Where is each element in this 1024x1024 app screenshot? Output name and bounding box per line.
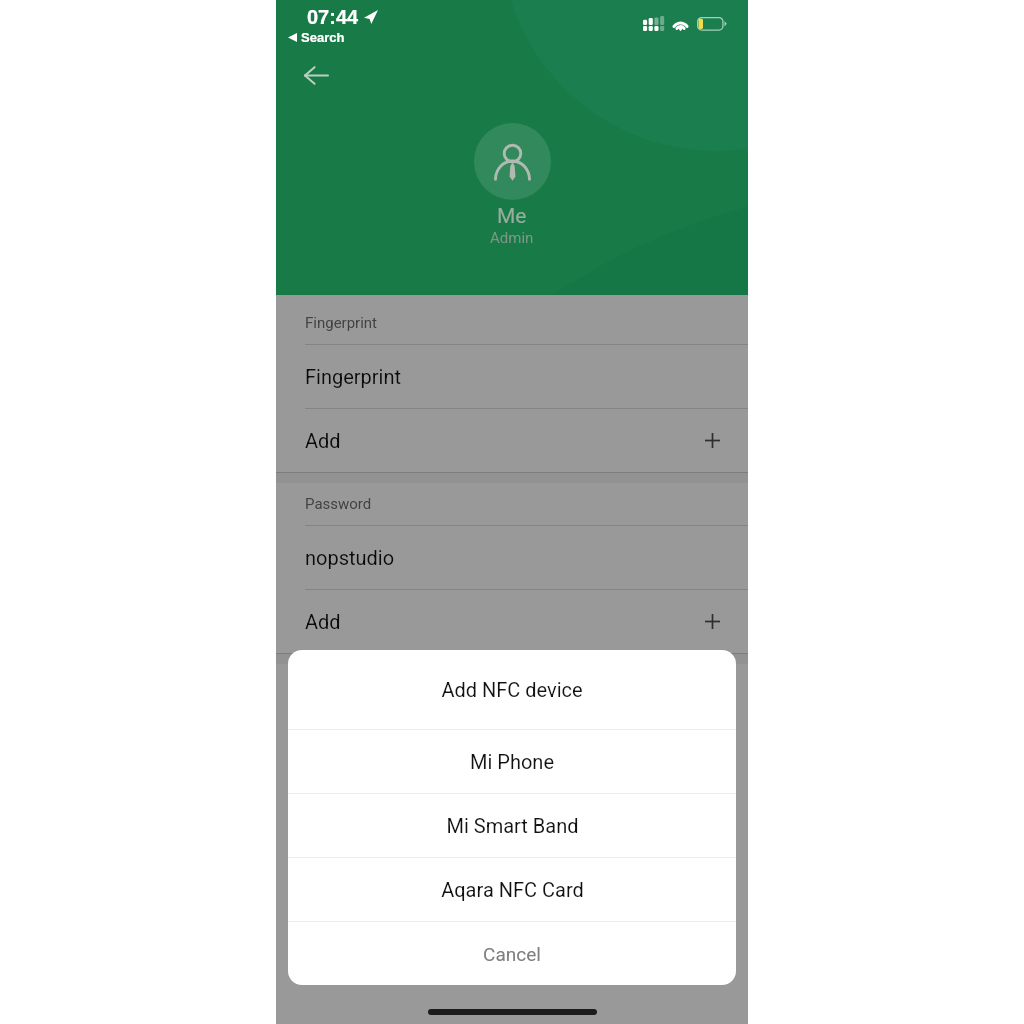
button[interactable]: Mi Phone [288,730,736,793]
staticText: Fingerprint [305,314,378,332]
button[interactable]: Profile [474,123,551,200]
button[interactable]: nopstudio [276,526,748,589]
staticText: Mi Phone [470,750,554,773]
staticText: Cancel [483,943,541,965]
staticText: Admin [490,229,534,247]
button[interactable]: Cancel [288,922,736,985]
staticText: 07:44 [307,6,359,28]
staticText: Add NFC device [441,678,583,701]
staticText: nopstudio [305,546,395,569]
button[interactable]: Mi Smart Band [288,794,736,857]
staticText: Add [305,610,341,633]
staticText: Fingerprint [305,365,402,388]
button[interactable]: Fingerprint [276,345,748,408]
button[interactable]: Add [276,590,748,653]
button[interactable]: Back [294,53,338,97]
staticText: Aqara NFC Card [441,878,584,901]
staticText: Add [305,429,341,452]
button[interactable]: Aqara NFC Card [288,858,736,921]
button[interactable]: Back to Search [288,30,345,45]
button[interactable]: Add NFC device [288,650,736,729]
staticText: Me [497,204,527,229]
staticText: Search [301,30,345,45]
staticText: Mi Smart Band [446,814,579,837]
staticText: Password [305,495,372,513]
button[interactable]: Add [276,409,748,472]
